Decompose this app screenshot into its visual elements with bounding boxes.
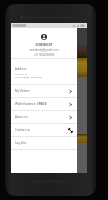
staticText: somebody@gmail.com	[11, 48, 77, 52]
staticText: Log Out	[15, 141, 27, 145]
staticText: H.No 21-4 Some Street, Some City	[15, 72, 43, 78]
other: Profile	[41, 34, 47, 40]
staticText: Address	[15, 67, 27, 71]
staticText: +91 9000000000	[11, 53, 77, 57]
button[interactable]: Wallet balance	[11, 98, 77, 110]
staticText: Contact us	[15, 128, 30, 132]
button[interactable]: Contact us	[11, 124, 77, 136]
other: Open	[68, 89, 73, 94]
button[interactable]: Address	[11, 59, 77, 84]
staticText: Wallet balance	[15, 102, 37, 106]
staticText: SOMEBODY	[11, 43, 77, 47]
staticText: ₹900.0	[37, 102, 47, 106]
staticText: About us	[15, 115, 28, 119]
staticText: My Orders	[15, 89, 30, 93]
button[interactable]: Log Out	[11, 137, 77, 149]
other: Open	[68, 102, 73, 107]
button[interactable]: About us	[11, 111, 77, 123]
other: Call	[68, 128, 73, 133]
other: Open	[68, 115, 73, 120]
button[interactable]: My Orders	[11, 85, 77, 97]
